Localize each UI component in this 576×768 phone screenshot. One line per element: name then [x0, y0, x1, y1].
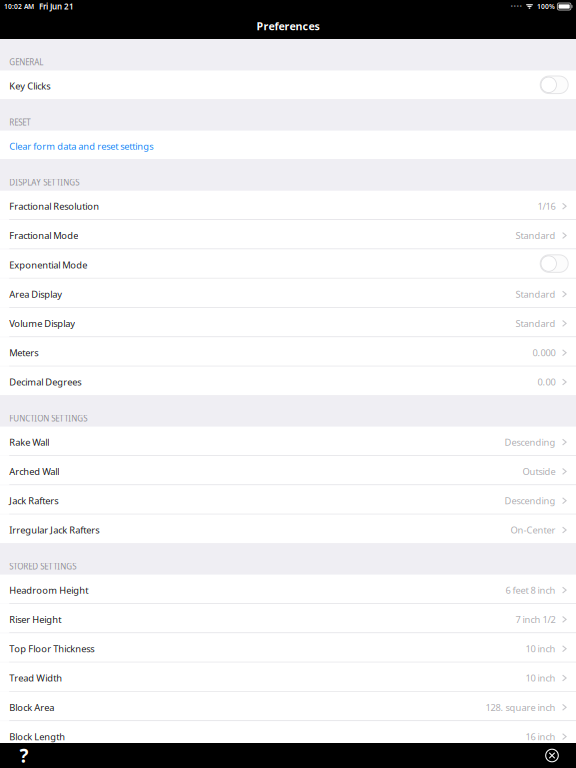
staticText: Fri Jun 21 — [39, 1, 74, 12]
staticText: Rake Wall — [9, 436, 49, 448]
button[interactable]: Irregular Jack Rafters — [0, 514, 576, 543]
staticText: 16 inch — [525, 730, 555, 743]
staticText: On-Center — [510, 524, 555, 536]
staticText: Headroom Height — [9, 584, 88, 596]
staticText: Meters — [9, 346, 38, 359]
staticText: Fractional Resolution — [9, 200, 99, 212]
button[interactable]: Area Display — [0, 279, 576, 307]
button[interactable]: Close — [539, 743, 565, 768]
button[interactable]: Headroom Height — [0, 575, 576, 603]
staticText: RESET — [9, 117, 30, 128]
staticText: 10:02 AM — [4, 2, 34, 11]
staticText: Standard — [515, 229, 555, 242]
staticText: Standard — [515, 317, 555, 330]
staticText: Jack Rafters — [9, 494, 58, 507]
staticText: STORED SETTINGS — [9, 561, 76, 572]
button[interactable]: Decimal Degrees — [0, 366, 576, 395]
button[interactable]: Arched Wall — [0, 456, 576, 484]
staticText: Tread Width — [9, 672, 62, 684]
staticText: 6 feet 8 inch — [505, 584, 555, 596]
staticText: ? — [19, 743, 28, 768]
button[interactable]: Clear form data and reset settings — [0, 131, 576, 159]
button[interactable]: Fractional Resolution — [0, 191, 576, 219]
staticText: Block Length — [9, 730, 65, 743]
staticText: •••• — [511, 2, 523, 11]
button[interactable]: Top Floor Thickness — [0, 633, 576, 662]
button[interactable]: Jack Rafters — [0, 485, 576, 514]
button[interactable]: Tread Width — [0, 662, 576, 691]
button[interactable]: Volume Display — [0, 308, 576, 336]
staticText: 10 inch — [525, 642, 555, 655]
button[interactable]: Help — [11, 743, 37, 768]
staticText: Block Area — [9, 701, 54, 713]
staticText: 1/16 — [537, 200, 555, 212]
staticText: Outside — [522, 465, 555, 478]
button[interactable]: Meters — [0, 337, 576, 366]
staticText: Riser Height — [9, 613, 61, 626]
staticText: Descending — [504, 494, 555, 507]
staticText: 0.000 — [532, 346, 555, 359]
staticText: Standard — [515, 288, 555, 300]
staticText: Fractional Mode — [9, 229, 78, 242]
staticText: Key Clicks — [9, 80, 50, 92]
staticText: Decimal Degrees — [9, 376, 81, 388]
button[interactable]: Block Length — [0, 721, 576, 750]
staticText: Arched Wall — [9, 465, 59, 478]
button[interactable]: Riser Height — [0, 604, 576, 632]
staticText: 0.00 — [537, 376, 555, 388]
staticText: Volume Display — [9, 317, 75, 330]
staticText: 10 inch — [525, 672, 555, 684]
staticText: 100% — [537, 2, 555, 11]
button[interactable]: Block Area — [0, 692, 576, 720]
staticText: 128. square inch — [485, 701, 555, 713]
staticText: Area Display — [9, 288, 62, 300]
button[interactable]: Rake Wall — [0, 427, 576, 455]
button[interactable]: Exponential Mode — [540, 256, 568, 274]
button[interactable]: Fractional Mode — [0, 220, 576, 249]
button[interactable]: Key Clicks — [540, 77, 568, 95]
staticText: Clear form data and reset settings — [9, 140, 153, 152]
staticText: Top Floor Thickness — [9, 642, 94, 655]
staticText: Descending — [504, 436, 555, 448]
staticText: Irregular Jack Rafters — [9, 524, 99, 536]
staticText: FUNCTION SETTINGS — [9, 413, 87, 424]
staticText: Preferences — [256, 19, 319, 33]
staticText: Exponential Mode — [9, 259, 87, 271]
staticText: GENERAL — [9, 57, 43, 67]
staticText: 7 inch 1/2 — [515, 613, 555, 626]
staticText: DISPLAY SETTINGS — [9, 177, 79, 188]
